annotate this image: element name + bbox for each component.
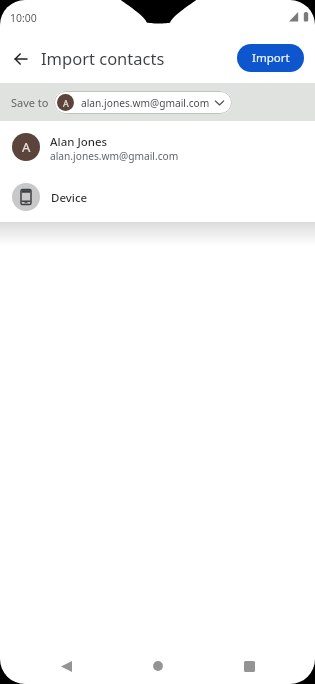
button[interactable]: Home bbox=[136, 648, 180, 684]
staticText: 10:00 bbox=[10, 11, 37, 25]
button[interactable]: Back bbox=[44, 648, 88, 684]
button[interactable]: Import bbox=[237, 44, 304, 72]
button[interactable]: A bbox=[0, 121, 315, 172]
staticText: Import contacts bbox=[41, 47, 165, 69]
staticText: Save to bbox=[11, 95, 49, 110]
staticText: A bbox=[22, 138, 31, 156]
staticText: A bbox=[63, 97, 69, 109]
button[interactable]: A bbox=[54, 91, 232, 114]
staticText: Import bbox=[252, 50, 290, 66]
staticText: Device bbox=[51, 190, 88, 206]
staticText: alan.jones.wm@gmail.com bbox=[81, 96, 210, 110]
button[interactable]: Recent apps bbox=[227, 648, 271, 684]
staticText: Alan Jones bbox=[50, 134, 108, 150]
button[interactable]: Back bbox=[4, 42, 37, 75]
button[interactable]: Device bbox=[0, 172, 315, 222]
staticText: alan.jones.wm@gmail.com bbox=[50, 149, 179, 163]
